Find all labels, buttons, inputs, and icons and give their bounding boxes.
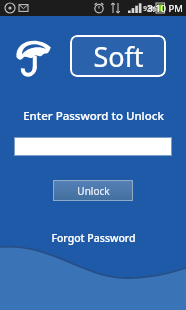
staticText: Unlock [77, 184, 110, 198]
staticText: Forgot Password [51, 231, 136, 245]
button[interactable]: Unlock [54, 181, 132, 200]
button[interactable]: Forgot Password [45, 229, 142, 247]
staticText: 3:10 PM [147, 2, 183, 15]
staticText: Soft [93, 38, 144, 75]
staticText: 92% [143, 4, 157, 13]
staticText: Enter Password to Unlock [23, 108, 164, 124]
other: App logo [14, 34, 54, 78]
